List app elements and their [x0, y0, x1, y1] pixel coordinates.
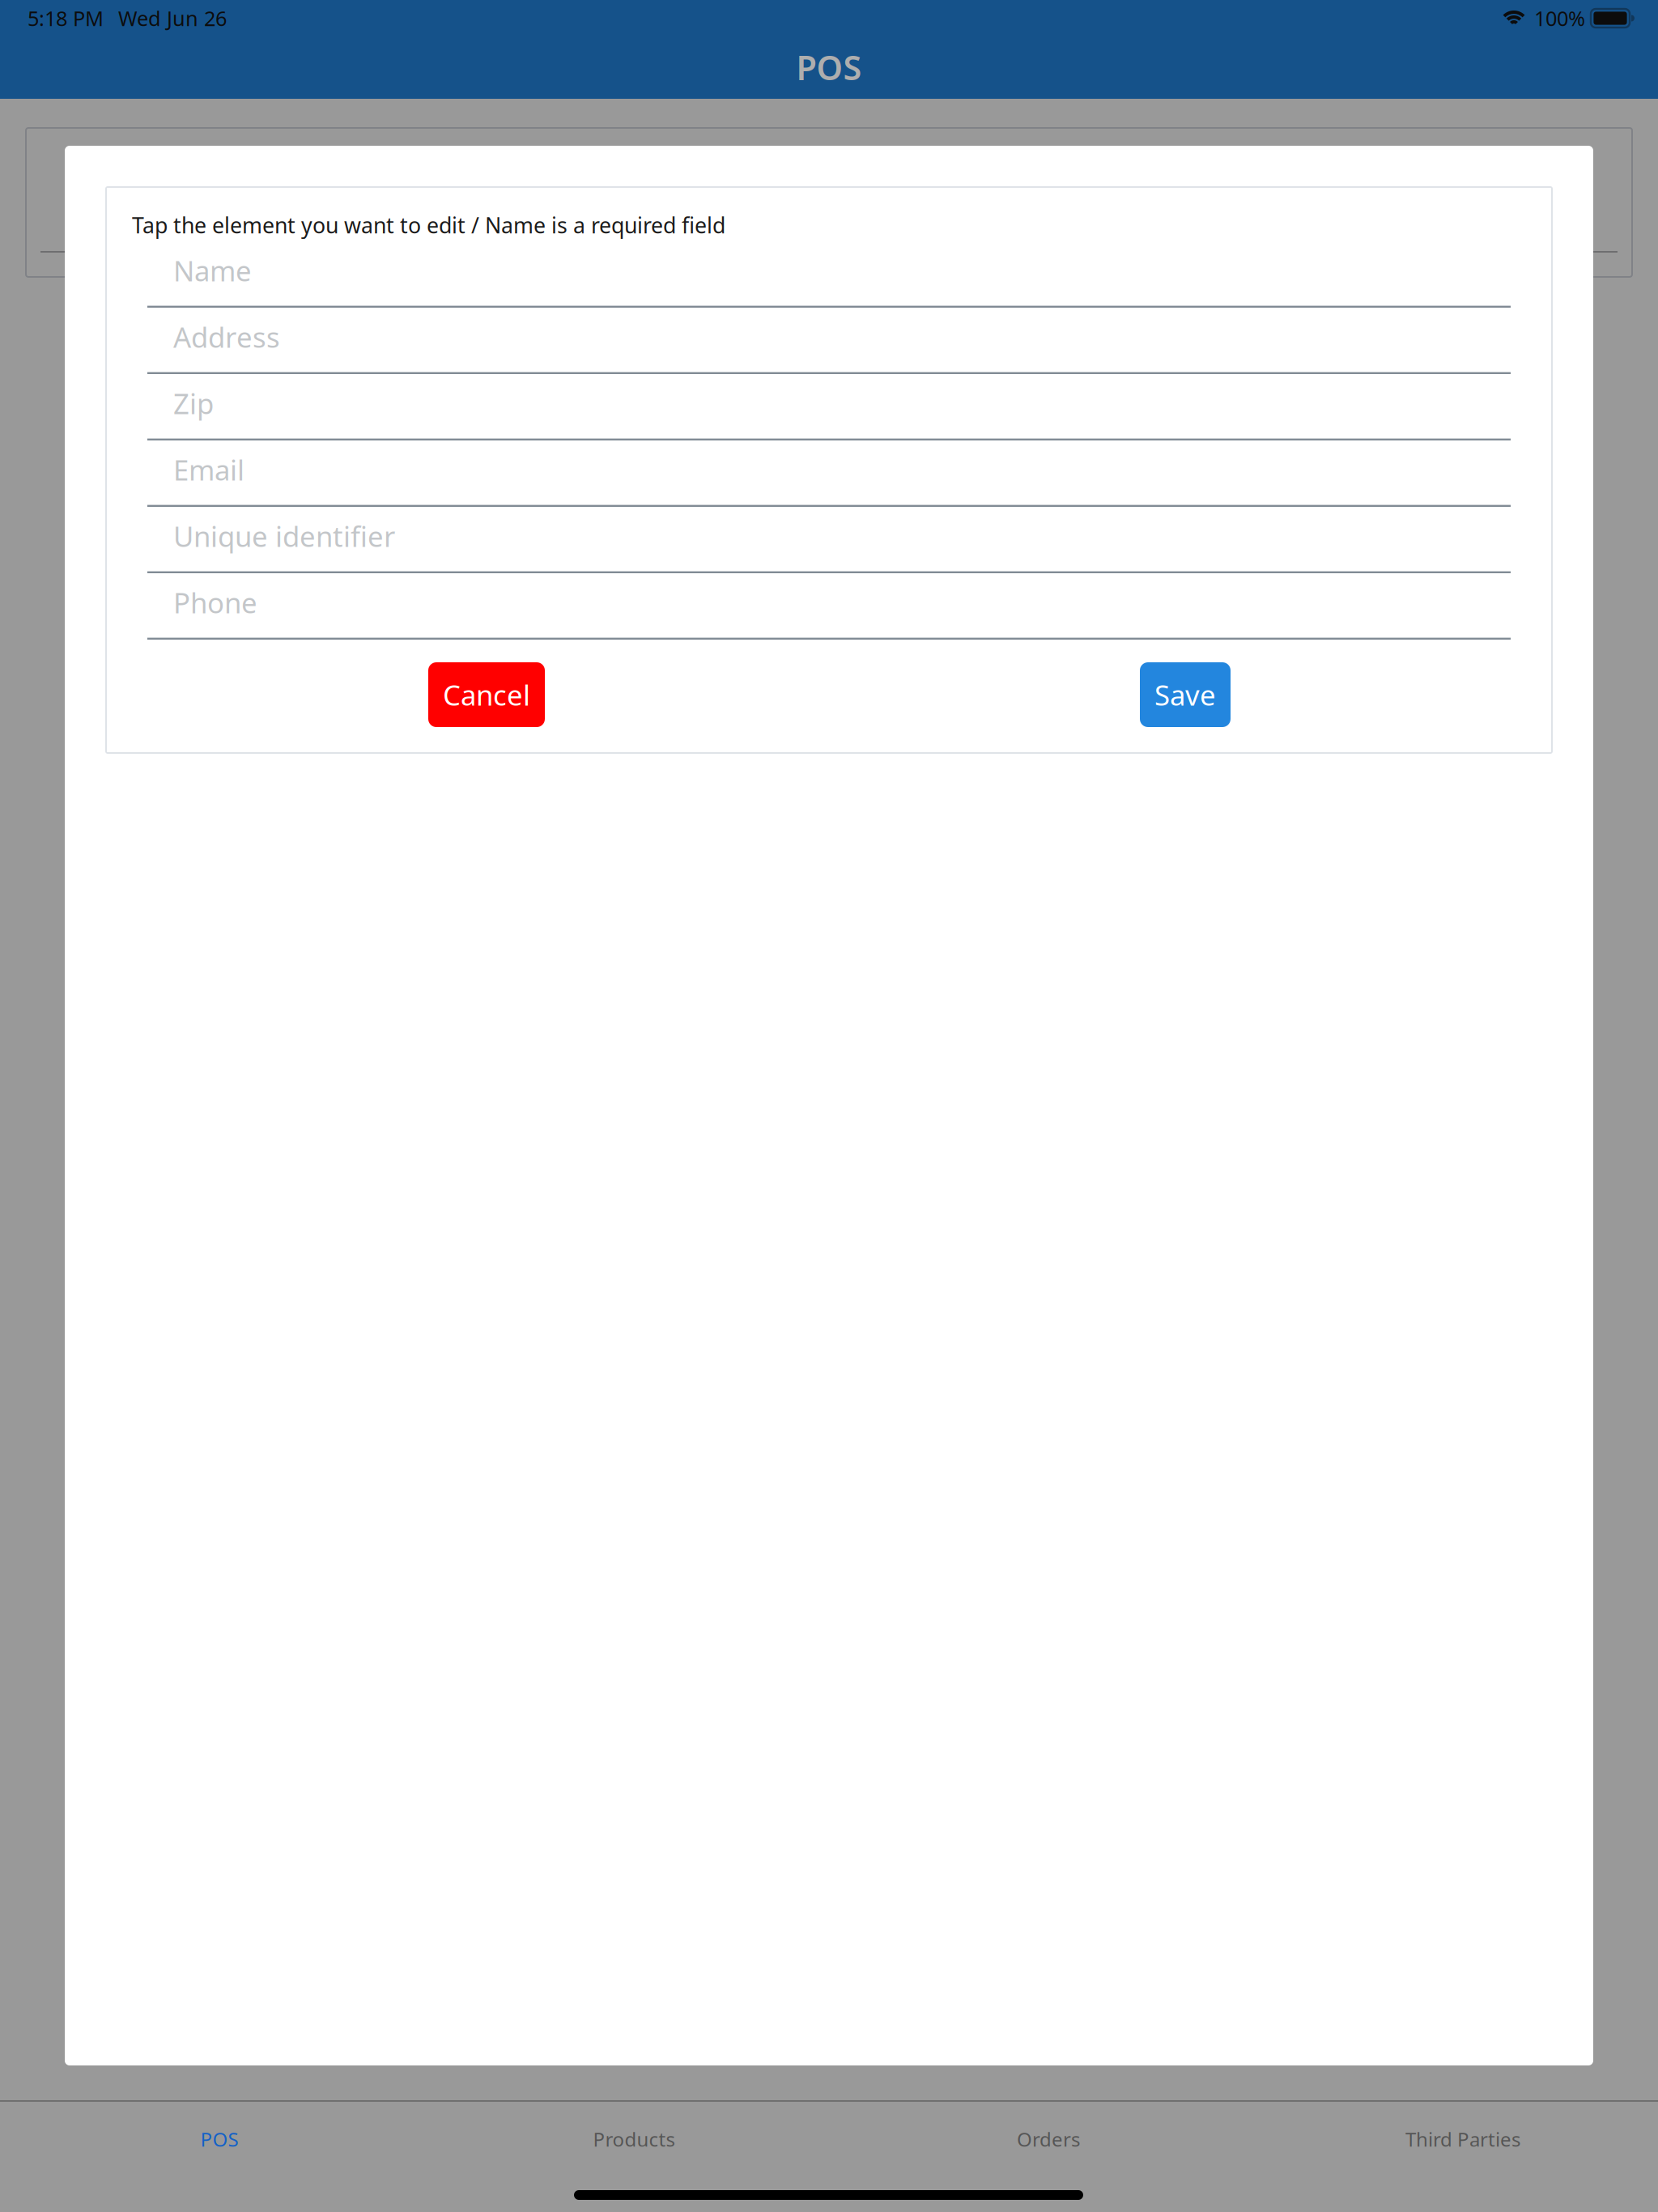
button[interactable]: Save — [1140, 662, 1231, 727]
button[interactable]: Orders — [846, 2112, 1251, 2166]
staticText: Wed Jun 26 — [118, 5, 227, 32]
button[interactable]: Name — [147, 241, 1511, 308]
staticText: Unique identifier — [173, 517, 395, 555]
staticText: Name — [173, 252, 252, 289]
staticText: POS — [200, 2126, 238, 2152]
button[interactable]: POS — [17, 2112, 422, 2166]
staticText: Third Parties — [1405, 2126, 1520, 2152]
staticText: POS — [796, 45, 862, 89]
button[interactable]: Zip — [147, 374, 1511, 440]
staticText: Zip — [173, 385, 214, 422]
button[interactable]: Third Parties — [1261, 2112, 1658, 2166]
staticText: 5:18 PM — [28, 5, 104, 32]
button[interactable]: Email — [147, 440, 1511, 507]
button[interactable]: Cancel — [428, 662, 545, 727]
staticText: Email — [173, 451, 244, 488]
button[interactable]: Phone — [147, 573, 1511, 640]
staticText: Tap the element you want to edit / Name … — [132, 211, 725, 239]
staticText: Cancel — [443, 676, 530, 713]
staticText: Save — [1154, 676, 1216, 713]
button[interactable]: Address — [147, 308, 1511, 374]
staticText: 100% — [1534, 5, 1585, 32]
staticText: Orders — [1017, 2126, 1080, 2152]
staticText: Products — [593, 2126, 675, 2152]
button[interactable]: Unique identifier — [147, 507, 1511, 573]
staticText: Address — [173, 318, 280, 355]
button[interactable]: Products — [432, 2112, 836, 2166]
staticText: Phone — [173, 584, 257, 621]
